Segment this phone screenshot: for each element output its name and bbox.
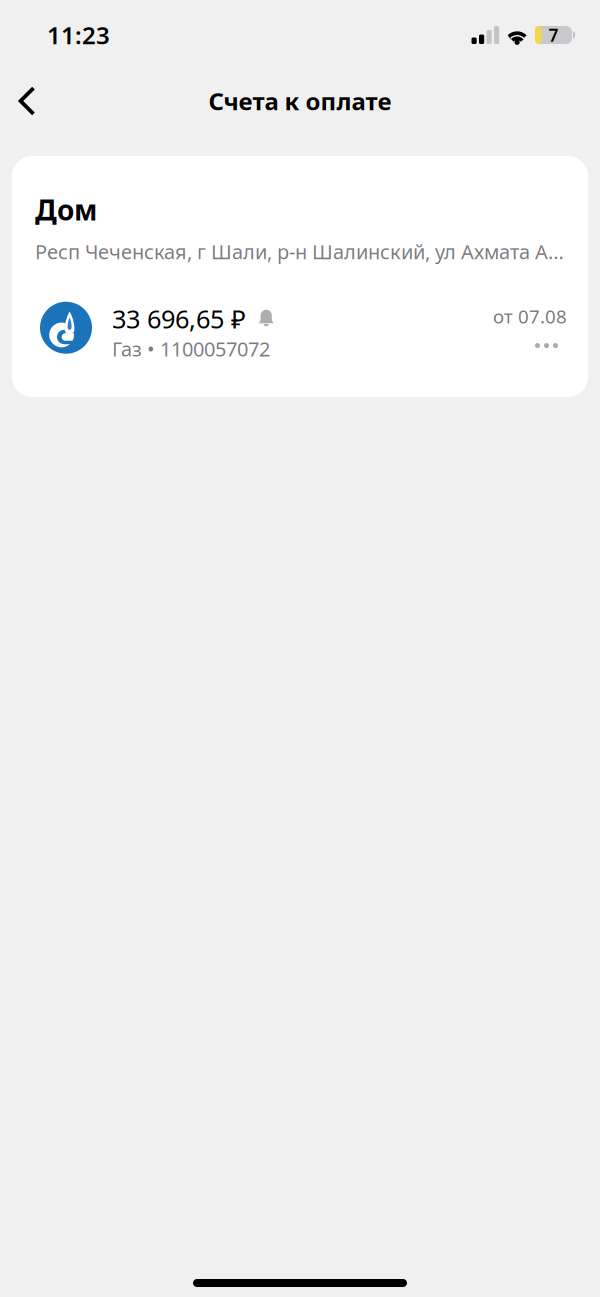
button[interactable]: More options	[522, 332, 567, 358]
staticText: Респ Чеченская, г Шали, р-н Шалинский, у…	[35, 238, 564, 265]
staticText: от 07.08	[493, 304, 567, 328]
staticText: Счета к оплате	[208, 85, 391, 117]
staticText: 11:23	[47, 19, 110, 51]
staticText: 33 696,65 ₽	[112, 302, 246, 335]
staticText: 7	[548, 23, 558, 46]
button[interactable]: Back	[5, 75, 49, 127]
button[interactable]: Дом	[0, 132, 600, 397]
staticText: Дом	[35, 191, 97, 228]
staticText: Газ • 1100057072	[112, 335, 270, 362]
